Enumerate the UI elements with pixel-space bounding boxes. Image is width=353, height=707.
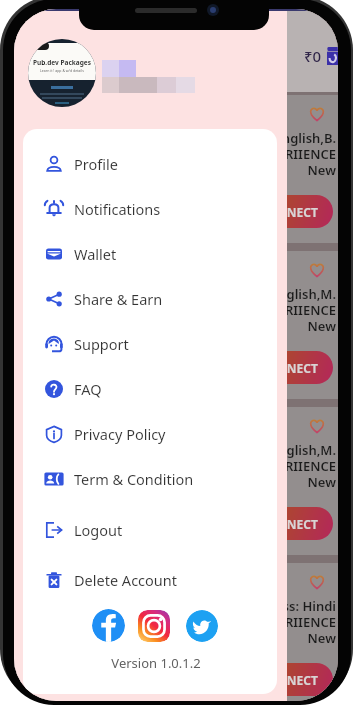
- button[interactable]: Share & Earn: [23, 276, 277, 321]
- staticText: Learn it ! app & w/d details: [40, 68, 84, 73]
- staticText: Privacy Policy: [74, 424, 166, 444]
- button[interactable]: Notifications: [23, 186, 277, 231]
- staticText: Wallet: [74, 244, 117, 264]
- button[interactable]: Join Class: English,M.: [14, 407, 338, 555]
- staticText: CONNECT: [260, 204, 318, 220]
- staticText: CONNECT: [260, 672, 318, 688]
- staticText: Term & Condition: [74, 469, 194, 489]
- button[interactable]: Join Class: English,B.: [14, 95, 338, 243]
- staticText: New: [14, 317, 336, 335]
- staticText: Delete Account: [74, 570, 177, 590]
- staticText: Version 1.0.1.2: [35, 654, 277, 672]
- staticText: CONNECT: [260, 360, 318, 376]
- staticText: Notifications: [74, 199, 161, 219]
- button[interactable]: FAQ: [23, 366, 277, 411]
- button[interactable]: Wallet: [327, 47, 338, 65]
- staticText: Join Class: English,B.: [14, 129, 336, 147]
- button[interactable]: Join Class: English,M.: [14, 251, 338, 399]
- button[interactable]: Privacy Policy: [23, 411, 277, 456]
- staticText: Join Class: English,M.: [14, 441, 336, 459]
- staticText: EXPRIIENCE: [14, 301, 336, 319]
- staticText: EXPRIIENCE: [14, 145, 336, 163]
- staticText: CONNECT: [260, 516, 318, 532]
- button[interactable]: Join Class: Hindi: [14, 563, 338, 701]
- staticText: Share & Earn: [74, 289, 163, 309]
- button[interactable]: CONNECT: [245, 507, 333, 540]
- button[interactable]: CONNECT: [245, 663, 333, 696]
- staticText: Profile: [74, 154, 118, 174]
- staticText: Join Class: English,M.: [14, 285, 336, 303]
- staticText: EXPRIIENCE: [14, 457, 336, 475]
- staticText: Support: [74, 334, 129, 354]
- button[interactable]: Term & Condition: [23, 456, 277, 501]
- staticText: New: [14, 473, 336, 491]
- staticText: Pub.dev Packages: [33, 58, 91, 67]
- button[interactable]: Facebook: [92, 609, 125, 642]
- staticText: EXPRIIENCE: [14, 613, 336, 631]
- staticText: FAQ: [74, 379, 102, 399]
- button[interactable]: CONNECT: [245, 195, 333, 228]
- staticText: ₹0: [304, 46, 322, 66]
- button[interactable]: Logout: [23, 507, 277, 552]
- button[interactable]: Profile: [23, 141, 277, 186]
- button[interactable]: Wallet: [23, 231, 277, 276]
- button[interactable]: Support: [23, 321, 277, 366]
- button[interactable]: Instagram: [138, 610, 170, 642]
- staticText: New: [14, 161, 336, 179]
- button[interactable]: Delete Account: [23, 557, 277, 602]
- button[interactable]: Twitter: [186, 610, 218, 642]
- staticText: Join Class: Hindi: [14, 597, 336, 615]
- staticText: Logout: [74, 520, 123, 540]
- button[interactable]: CONNECT: [245, 351, 333, 384]
- button[interactable]: Profile photo: [28, 39, 96, 107]
- staticText: New: [14, 629, 336, 647]
